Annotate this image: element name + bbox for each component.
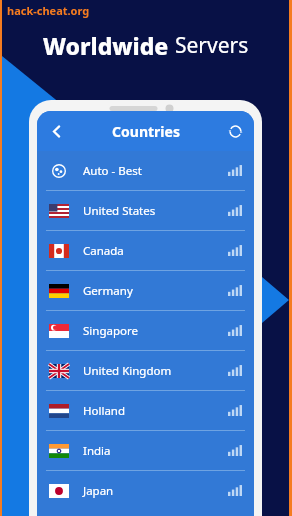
button[interactable]: Canada [37,231,254,270]
staticText: United Kingdom [83,363,172,379]
staticText: Countries [112,122,180,141]
button[interactable]: United States [37,191,254,230]
button[interactable]: Germany [37,271,254,310]
button[interactable]: Japan [37,471,254,510]
button[interactable]: India [37,431,254,470]
staticText: United States [83,203,156,219]
staticText: Servers [175,31,249,60]
staticText: Germany [83,283,133,299]
button[interactable]: Refresh [221,117,249,145]
button[interactable]: Back [41,116,71,146]
staticText: India [83,443,111,459]
button[interactable]: Singapore [37,311,254,350]
staticText: Japan [83,483,114,499]
staticText: Worldwide [43,30,169,61]
staticText: Canada [83,243,124,259]
staticText: Auto - Best [83,163,142,179]
staticText: Holland [83,403,126,419]
button[interactable]: Holland [37,391,254,430]
staticText: Singapore [83,323,138,339]
staticText: hack-cheat.org [7,3,90,18]
button[interactable]: Auto - Best [37,151,254,190]
button[interactable]: United Kingdom [37,351,254,390]
